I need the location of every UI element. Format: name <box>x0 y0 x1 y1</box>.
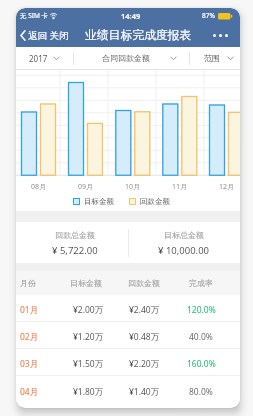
staticText: 业绩目标完成度报表 <box>85 28 192 43</box>
staticText: ¥2.40万 <box>129 304 160 316</box>
staticText: 返回 关闭 <box>28 29 69 42</box>
staticText: 03月 <box>20 358 39 370</box>
button[interactable]: 01月 <box>16 295 240 322</box>
button[interactable]: 04月 <box>16 376 240 403</box>
staticText: ¥2.00万 <box>73 304 104 316</box>
staticText: 2017 <box>29 53 48 64</box>
staticText: 12月 <box>219 182 235 192</box>
staticText: ¥0.48万 <box>129 331 160 343</box>
staticText: 范围 <box>204 53 220 63</box>
staticText: 无 SIM 卡 <box>20 11 49 20</box>
button[interactable]: 目标总金额 <box>128 224 240 263</box>
staticText: ¥ 5,722.00 <box>52 244 98 257</box>
staticText: 87% <box>202 11 215 20</box>
button[interactable]: 02月 <box>16 322 240 349</box>
staticText: ¥1.40万 <box>129 386 160 398</box>
staticText: 02月 <box>20 331 39 343</box>
staticText: ¥ 10,000.00 <box>158 244 210 257</box>
staticText: 合同回款金额 <box>102 53 150 63</box>
button[interactable] <box>213 34 228 37</box>
staticText: 160.0% <box>187 358 216 370</box>
staticText: 月份 <box>20 278 36 288</box>
staticText: 40.0% <box>189 331 213 343</box>
staticText: 回款金额 <box>128 278 160 288</box>
staticText: 回款金额 <box>140 197 170 206</box>
button[interactable]: 返回 关闭 <box>20 29 69 42</box>
staticText: 04月 <box>20 386 39 398</box>
staticText: 01月 <box>20 304 39 316</box>
staticText: 11月 <box>172 182 188 192</box>
staticText: 14:49 <box>121 11 141 21</box>
staticText: 目标金额 <box>70 278 102 288</box>
staticText: 完成率 <box>189 278 213 288</box>
staticText: 09月 <box>78 182 94 192</box>
button[interactable]: 范围 <box>190 47 240 69</box>
staticText: ¥1.80万 <box>73 386 104 398</box>
staticText: 120.0% <box>187 304 216 316</box>
staticText: ¥1.20万 <box>73 331 104 343</box>
staticText: ¥2.20万 <box>129 358 160 370</box>
staticText: 80.0% <box>189 386 213 398</box>
staticText: 目标总金额 <box>164 230 204 240</box>
staticText: 10月 <box>125 182 141 192</box>
staticText: 08月 <box>31 182 47 192</box>
button[interactable]: 回款总金额 <box>16 224 128 263</box>
staticText: 回款总金额 <box>55 230 95 240</box>
staticText: 目标金额 <box>84 197 114 206</box>
button[interactable]: 合同回款金额 <box>74 47 189 69</box>
staticText: ¥1.50万 <box>73 358 104 370</box>
button[interactable]: 2017 <box>16 47 73 69</box>
button[interactable]: 03月 <box>16 349 240 376</box>
